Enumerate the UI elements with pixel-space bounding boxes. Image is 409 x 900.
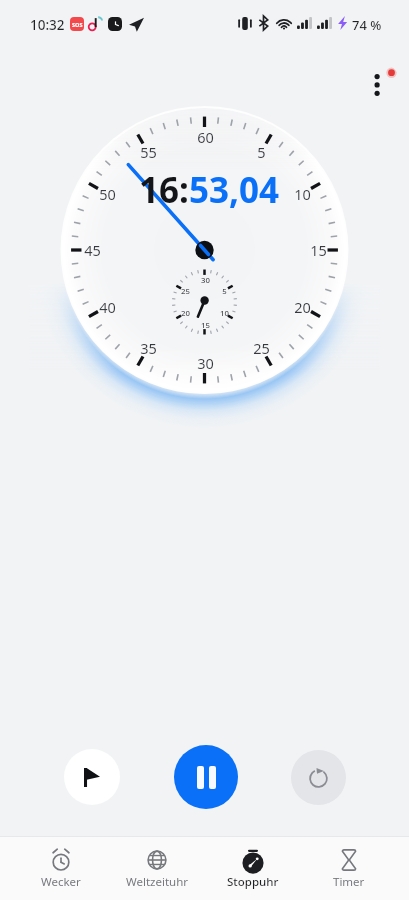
staticText: 30 [201,275,210,286]
button[interactable]: Stoppuhr [205,837,301,900]
button[interactable]: Timer [301,837,397,900]
staticText: 35 [140,338,157,358]
button[interactable]: Pause [174,745,238,809]
staticText: 5 [257,142,266,162]
staticText: Wecker [41,874,81,890]
button[interactable]: Wecker [13,837,109,900]
staticText: 60 [197,127,214,147]
staticText: SOS [72,21,83,28]
staticText: 16:53,04 [139,166,279,214]
staticText: 10:32 [30,16,65,34]
button[interactable]: Reset [291,750,346,805]
staticText: 15 [310,240,327,260]
staticText: Stoppuhr [227,874,279,890]
staticText: Weltzeituhr [126,874,189,890]
staticText: 20 [294,297,311,317]
staticText: 25 [253,338,270,358]
staticText: 45 [84,240,101,260]
staticText: 50 [99,184,116,204]
staticText: 40 [99,297,116,317]
staticText: 74 % [352,16,382,34]
staticText: 25 [181,286,190,297]
staticText: 10 [294,184,311,204]
staticText: 5 [222,286,227,297]
button[interactable]: Lap [64,749,120,805]
staticText: Timer [333,874,365,890]
staticText: 55 [140,142,157,162]
staticText: 30 [197,353,214,373]
staticText: 15 [201,320,210,331]
button[interactable]: Weltzeituhr [109,837,205,900]
button[interactable]: More options [355,62,401,108]
staticText: 20 [181,308,190,319]
staticText: 10 [220,308,229,319]
